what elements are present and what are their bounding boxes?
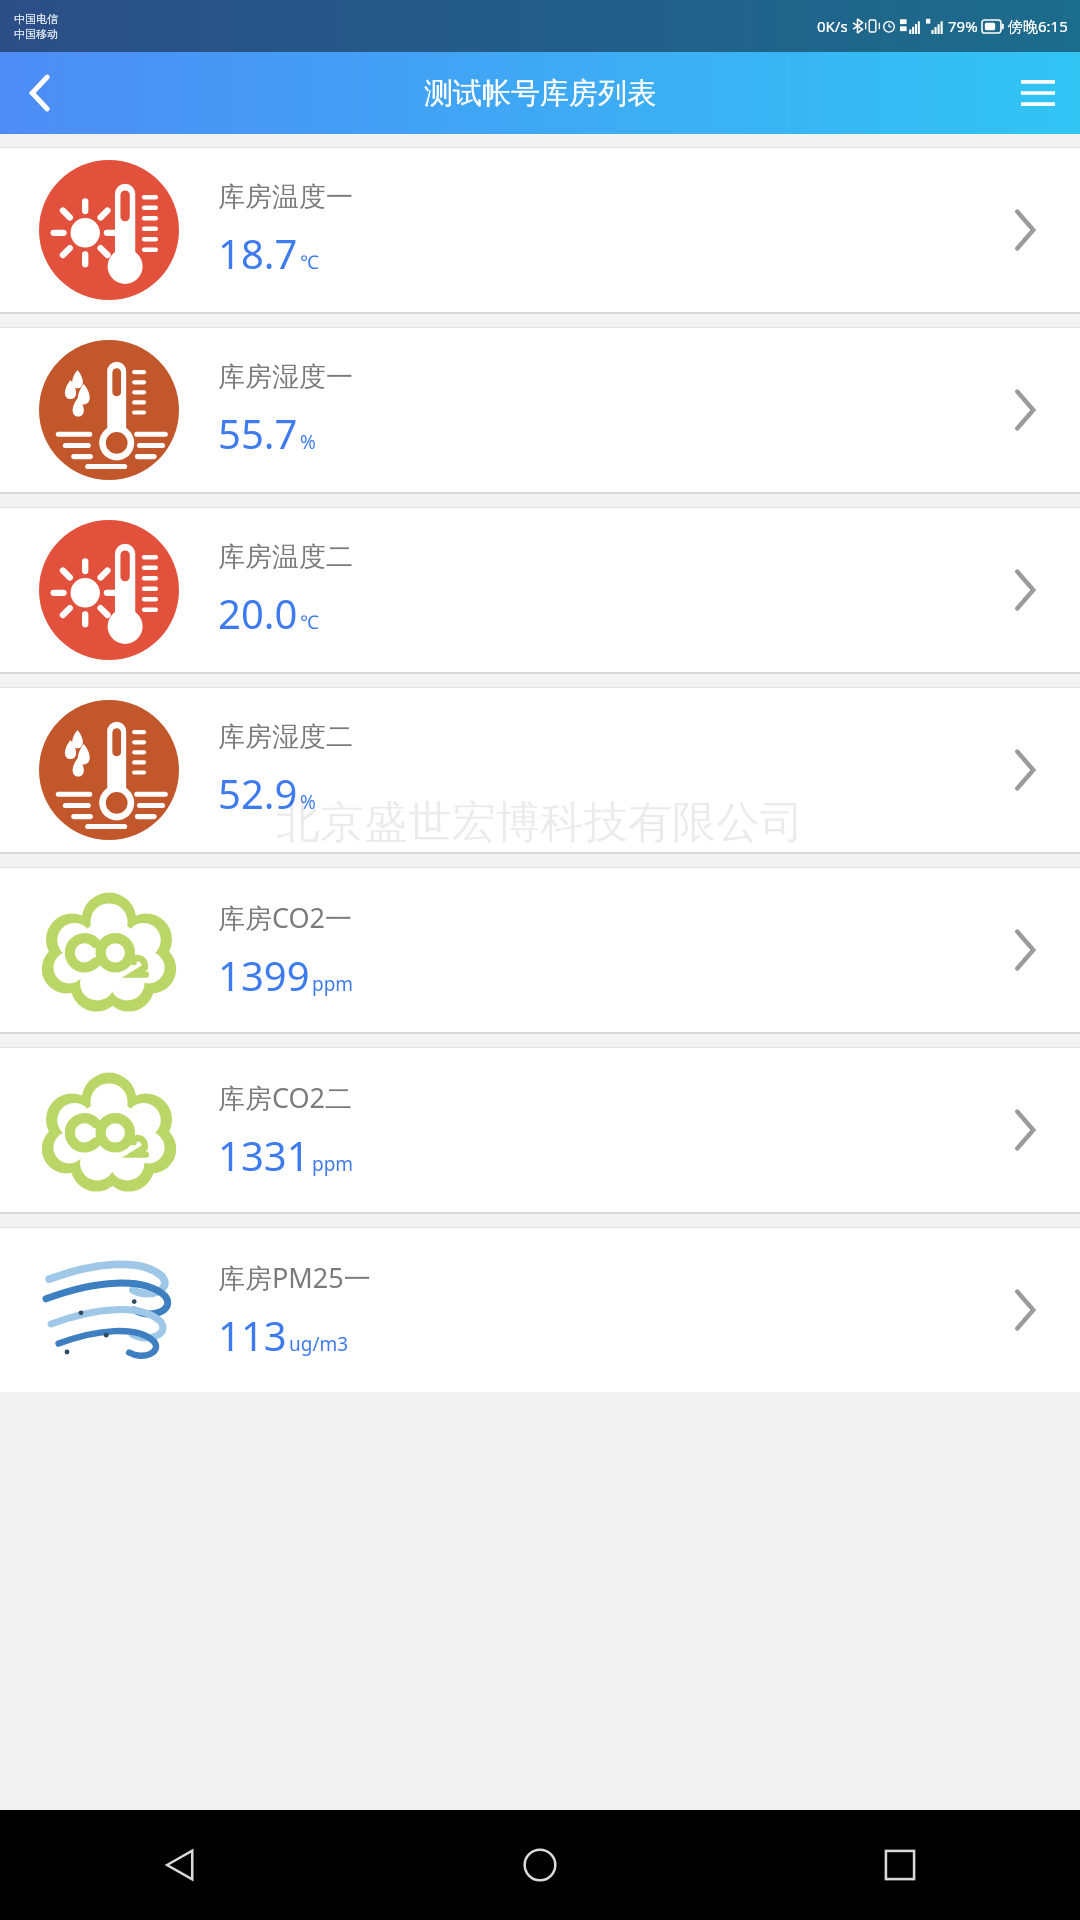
staticText: 18.7 xyxy=(218,226,298,280)
button[interactable]: 库房温度一 xyxy=(0,148,1080,312)
staticText: 库房PM25一 xyxy=(218,1259,371,1296)
button[interactable]: 库房CO2二 xyxy=(0,1048,1080,1212)
staticText: ℃ xyxy=(300,249,319,275)
staticText: % xyxy=(300,429,316,455)
staticText: 中国移动 xyxy=(14,27,58,41)
staticText: 北京盛世宏博科技有限公司 xyxy=(276,795,804,850)
staticText: 库房湿度一 xyxy=(218,360,353,394)
staticText: 库房温度二 xyxy=(218,540,353,574)
staticText: ℃ xyxy=(300,609,319,635)
button[interactable]: Back xyxy=(0,1810,360,1920)
staticText: 1331 xyxy=(218,1128,310,1182)
staticText: 1399 xyxy=(218,948,310,1002)
staticText: 52.9 xyxy=(218,766,298,820)
staticText: 库房CO2一 xyxy=(218,899,353,936)
button[interactable]: Recents xyxy=(720,1810,1080,1920)
staticText: ppm xyxy=(312,971,354,997)
staticText: 0K/s xyxy=(817,16,848,36)
button[interactable]: 库房PM25一 xyxy=(0,1228,1080,1392)
staticText: 库房温度一 xyxy=(218,180,353,214)
button[interactable]: Back xyxy=(8,61,72,125)
staticText: 测试帐号库房列表 xyxy=(424,75,656,112)
staticText: % xyxy=(300,789,316,815)
staticText: ug/m3 xyxy=(289,1331,349,1357)
staticText: 79% xyxy=(948,16,978,36)
staticText: 20.0 xyxy=(218,586,298,640)
staticText: 库房CO2二 xyxy=(218,1079,353,1116)
staticText: 中国电信 xyxy=(14,12,58,26)
staticText: 傍晚6:15 xyxy=(1008,16,1068,36)
staticText: 库房湿度二 xyxy=(218,720,353,754)
button[interactable]: Home xyxy=(360,1810,720,1920)
button[interactable]: 库房湿度一 xyxy=(0,328,1080,492)
button[interactable]: 库房温度二 xyxy=(0,508,1080,672)
staticText: ppm xyxy=(312,1151,354,1177)
button[interactable]: Menu xyxy=(1006,61,1070,125)
button[interactable]: 库房湿度二 xyxy=(0,688,1080,852)
button[interactable]: 库房CO2一 xyxy=(0,868,1080,1032)
staticText: 113 xyxy=(218,1308,287,1362)
staticText: 55.7 xyxy=(218,406,298,460)
